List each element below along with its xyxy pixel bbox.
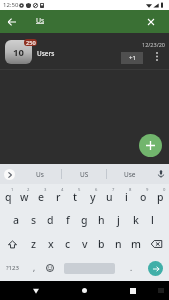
- staticText: i: [125, 190, 128, 204]
- staticText: v: [82, 237, 88, 251]
- button[interactable]: s: [25, 208, 42, 232]
- staticText: k: [133, 213, 139, 227]
- button[interactable]: More suggestions: [0, 164, 18, 184]
- staticText: 6: [95, 187, 98, 193]
- staticText: 7: [112, 187, 115, 193]
- button[interactable]: f: [59, 208, 76, 232]
- button[interactable]: z: [25, 232, 42, 256]
- staticText: o: [140, 190, 147, 204]
- button[interactable]: .: [122, 256, 140, 280]
- button[interactable]: Home: [73, 281, 95, 300]
- staticText: b: [98, 237, 105, 251]
- button[interactable]: Back: [24, 281, 47, 300]
- staticText: l: [151, 213, 154, 227]
- button[interactable]: a: [8, 208, 25, 232]
- button[interactable]: 3: [33, 184, 50, 208]
- staticText: 10: [13, 46, 24, 59]
- button[interactable]: US: [62, 164, 107, 184]
- button[interactable]: x: [42, 232, 59, 256]
- staticText: q: [5, 190, 12, 204]
- button[interactable]: 9: [135, 184, 152, 208]
- button[interactable]: More options: [148, 50, 165, 63]
- button[interactable]: 7: [101, 184, 118, 208]
- staticText: y: [90, 190, 96, 204]
- button[interactable]: Us: [18, 164, 62, 184]
- button[interactable]: ?123: [0, 256, 24, 280]
- button[interactable]: v: [76, 232, 93, 256]
- button[interactable]: m: [127, 232, 144, 256]
- button[interactable]: Hide keyboard: [153, 281, 169, 300]
- staticText: 4: [61, 187, 64, 193]
- staticText: 8: [129, 187, 132, 193]
- button[interactable]: +1: [121, 52, 143, 64]
- staticText: z: [31, 237, 37, 251]
- staticText: u: [106, 190, 113, 204]
- staticText: ,: [33, 262, 36, 273]
- button[interactable]: 4: [50, 184, 67, 208]
- staticText: r: [56, 190, 61, 204]
- button[interactable]: 6: [84, 184, 101, 208]
- staticText: 1: [11, 187, 14, 193]
- staticText: .: [130, 262, 133, 273]
- staticText: Us: [36, 170, 44, 179]
- button[interactable]: Shift: [0, 232, 25, 256]
- button[interactable]: Voice input: [152, 164, 169, 184]
- staticText: ?123: [6, 264, 19, 272]
- staticText: w: [20, 190, 29, 204]
- button[interactable]: Add: [139, 134, 162, 157]
- staticText: 2: [27, 187, 30, 193]
- staticText: Users: [37, 49, 55, 58]
- staticText: 3: [44, 187, 47, 193]
- button[interactable]: n: [110, 232, 127, 256]
- staticText: a: [13, 213, 20, 227]
- staticText: m: [131, 237, 141, 251]
- button[interactable]: l: [144, 208, 161, 232]
- staticText: c: [65, 237, 71, 251]
- button[interactable]: Enter: [148, 261, 163, 276]
- button[interactable]: h: [93, 208, 110, 232]
- button[interactable]: Backspace: [144, 232, 169, 256]
- button[interactable]: 0: [152, 184, 169, 208]
- button[interactable]: Emoji: [42, 256, 58, 280]
- button[interactable]: d: [42, 208, 59, 232]
- button[interactable]: g: [76, 208, 93, 232]
- button[interactable]: ,: [24, 256, 44, 280]
- button[interactable]: b: [93, 232, 110, 256]
- staticText: h: [98, 213, 105, 227]
- staticText: t: [73, 190, 78, 204]
- staticText: US: [80, 170, 89, 179]
- button[interactable]: Close: [139, 10, 162, 33]
- staticText: f: [66, 213, 70, 227]
- staticText: 12:50: [3, 1, 19, 9]
- staticText: s: [31, 213, 37, 227]
- button[interactable]: 8: [118, 184, 135, 208]
- button[interactable]: Back: [0, 10, 24, 33]
- staticText: d: [47, 213, 54, 227]
- staticText: 0: [163, 187, 166, 193]
- staticText: x: [48, 237, 54, 251]
- staticText: j: [117, 213, 120, 227]
- button[interactable]: 10: [0, 33, 169, 69]
- staticText: e: [38, 190, 45, 204]
- staticText: p: [157, 190, 164, 204]
- button[interactable]: Recents: [122, 281, 144, 300]
- staticText: Us: [36, 16, 45, 26]
- button[interactable]: Use: [107, 164, 152, 184]
- button[interactable]: 2: [16, 184, 33, 208]
- staticText: n: [115, 237, 122, 251]
- button[interactable]: 5: [67, 184, 84, 208]
- staticText: 250: [26, 39, 36, 46]
- button[interactable]: k: [127, 208, 144, 232]
- button[interactable]: c: [59, 232, 76, 256]
- staticText: g: [81, 213, 88, 227]
- staticText: +1: [129, 54, 136, 62]
- staticText: Use: [124, 170, 136, 179]
- staticText: 9: [146, 187, 149, 193]
- button[interactable]: j: [110, 208, 127, 232]
- staticText: 12/23/20: [142, 41, 165, 48]
- button[interactable]: 1: [0, 184, 16, 208]
- staticText: 5: [78, 187, 81, 193]
